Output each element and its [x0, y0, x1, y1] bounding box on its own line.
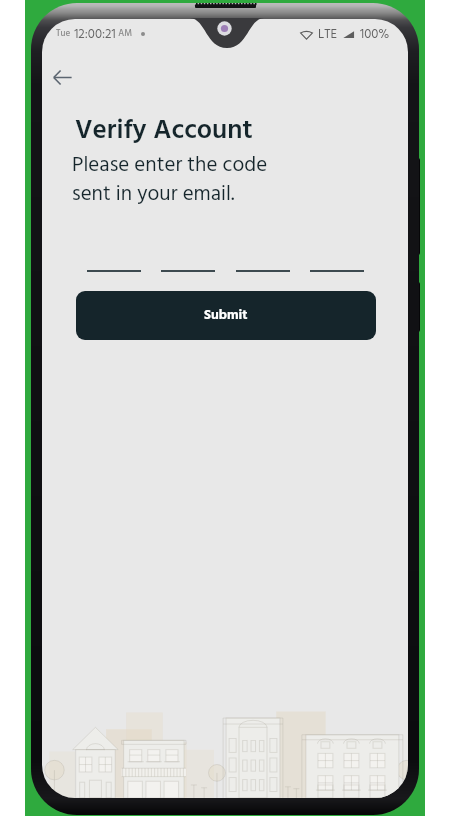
button[interactable] [310, 252, 364, 272]
staticText: 12:00:21 [71, 24, 116, 45]
staticText: Verify Account [75, 110, 253, 153]
staticText: 100% [360, 24, 390, 45]
staticText: Submit [204, 305, 248, 327]
button[interactable] [161, 252, 215, 272]
button[interactable] [236, 252, 290, 272]
staticText: Please enter the code sent in your email… [72, 149, 268, 212]
staticText: LTE [318, 24, 337, 45]
staticText: AM [116, 27, 132, 41]
button[interactable]: Back [43, 58, 81, 96]
button[interactable] [87, 252, 141, 272]
button[interactable]: Submit [76, 291, 376, 340]
staticText: Tue [56, 27, 71, 41]
